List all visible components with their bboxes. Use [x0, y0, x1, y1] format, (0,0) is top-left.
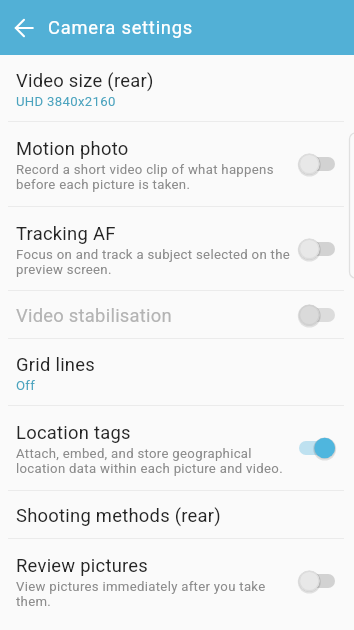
button[interactable]: Navigate up: [0, 4, 48, 52]
staticText: View pictures immediately after you take…: [16, 579, 266, 609]
button[interactable]: Grid lines: [0, 339, 354, 405]
staticText: Motion photo: [16, 138, 129, 160]
button[interactable]: Switch on: [299, 435, 335, 461]
button[interactable]: Review pictures: [0, 539, 354, 623]
button[interactable]: Video stabilisation: [0, 291, 354, 338]
staticText: Video size (rear): [16, 70, 154, 92]
button[interactable]: Motion photo: [0, 122, 354, 206]
staticText: Camera settings: [48, 17, 194, 38]
staticText: Attach, embed, and store geographical lo…: [16, 446, 283, 476]
staticText: Location tags: [16, 422, 131, 444]
button[interactable]: Switch off: [299, 568, 335, 594]
staticText: Off: [16, 378, 36, 393]
staticText: Video stabilisation: [16, 305, 172, 327]
staticText: UHD 3840x2160: [16, 94, 116, 109]
staticText: Tracking AF: [16, 223, 116, 245]
button[interactable]: Video size (rear): [0, 55, 354, 121]
button[interactable]: Shooting methods (rear): [0, 491, 354, 538]
button[interactable]: Switch off: [299, 151, 335, 177]
button[interactable]: Switch off: [299, 236, 335, 262]
button[interactable]: Switch off: [299, 302, 335, 328]
staticText: Record a short video clip of what happen…: [16, 162, 274, 192]
staticText: Grid lines: [16, 354, 96, 376]
staticText: Focus on and track a subject selected on…: [16, 247, 291, 277]
button[interactable]: Location tags: [0, 406, 354, 490]
button[interactable]: Tracking AF: [0, 207, 354, 290]
staticText: Review pictures: [16, 555, 149, 577]
staticText: Shooting methods (rear): [16, 505, 221, 527]
